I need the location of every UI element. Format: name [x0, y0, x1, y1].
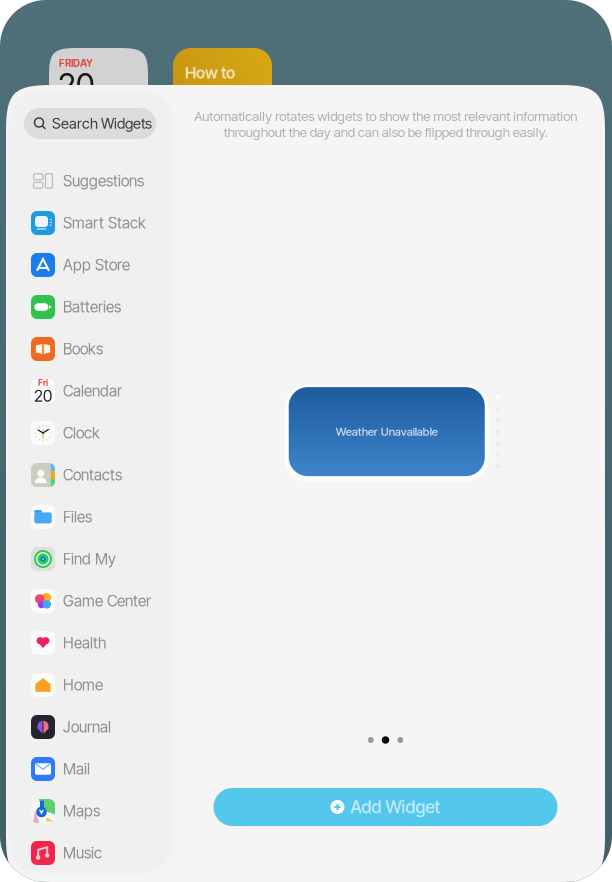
- staticText: 20: [58, 66, 95, 105]
- staticText: Find My: [63, 550, 116, 568]
- staticText: Music: [63, 844, 102, 862]
- staticText: Batteries: [63, 298, 121, 316]
- button[interactable]: App Store: [12, 244, 167, 286]
- button[interactable]: Maps: [12, 790, 167, 832]
- button[interactable]: Files: [12, 496, 167, 538]
- staticText: Calendar: [63, 382, 122, 400]
- button[interactable]: Contacts: [12, 454, 167, 496]
- button[interactable]: Batteries: [12, 286, 167, 328]
- staticText: Smart Stack: [63, 214, 146, 232]
- staticText: Suggestions: [63, 172, 144, 190]
- staticText: Home: [63, 676, 103, 694]
- button[interactable]: Smart Stack: [12, 202, 167, 244]
- staticText: App Store: [63, 256, 130, 274]
- staticText: Maps: [63, 802, 100, 820]
- button[interactable]: Suggestions: [12, 160, 167, 202]
- staticText: Contacts: [63, 466, 122, 484]
- button[interactable]: Home: [12, 664, 167, 706]
- button[interactable]: Game Center: [12, 580, 167, 622]
- button[interactable]: Search Widgets: [24, 108, 156, 139]
- staticText: Automatically rotates widgets to show th…: [194, 108, 577, 140]
- button[interactable]: Books: [12, 328, 167, 370]
- button[interactable]: Fri: [12, 370, 167, 412]
- button[interactable]: Find My: [12, 538, 167, 580]
- button[interactable]: Music: [12, 832, 167, 874]
- staticText: 20: [34, 386, 52, 406]
- staticText: Journal: [63, 718, 111, 736]
- staticText: Search Widgets: [52, 115, 152, 132]
- staticText: Mail: [63, 760, 90, 778]
- staticText: Health: [63, 634, 106, 652]
- staticText: Fri: [38, 377, 48, 388]
- staticText: Clock: [63, 424, 100, 442]
- staticText: Books: [63, 340, 103, 358]
- button[interactable]: Journal: [12, 706, 167, 748]
- staticText: Add Widget: [350, 796, 440, 817]
- staticText: Weather Unavailable: [336, 425, 438, 438]
- staticText: Game Center: [63, 592, 151, 610]
- button[interactable]: Mail: [12, 748, 167, 790]
- staticText: How to: [185, 63, 235, 82]
- button[interactable]: Add Widget: [213, 788, 557, 826]
- staticText: FRIDAY: [59, 57, 93, 69]
- button[interactable]: Clock: [12, 412, 167, 454]
- staticText: Files: [63, 508, 92, 526]
- button[interactable]: Health: [12, 622, 167, 664]
